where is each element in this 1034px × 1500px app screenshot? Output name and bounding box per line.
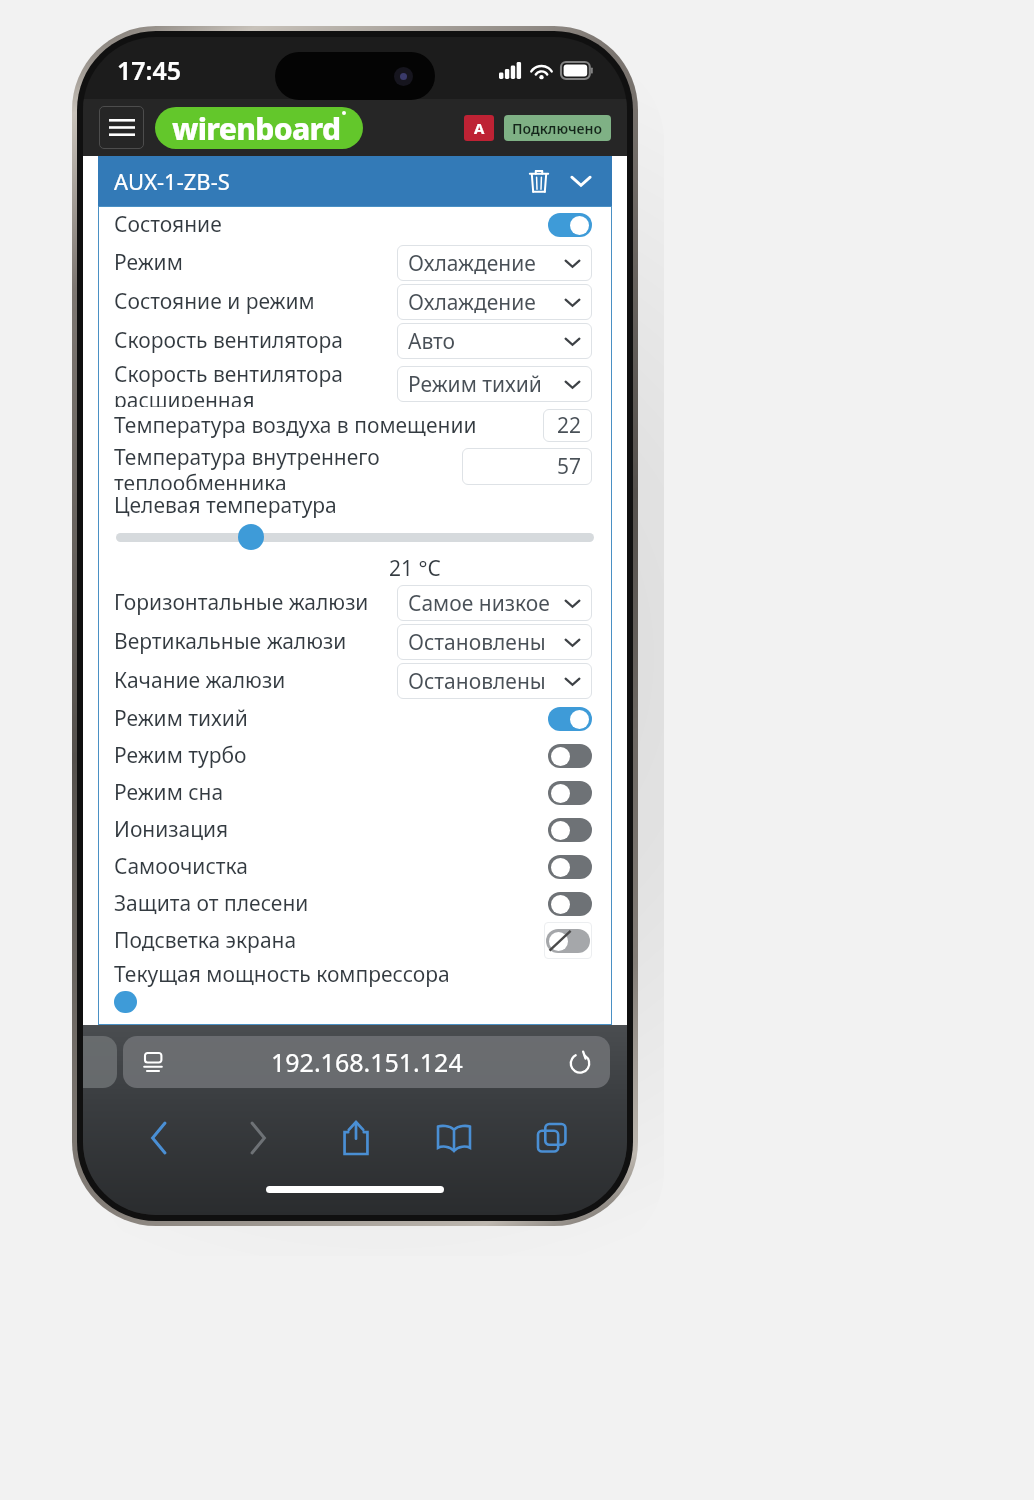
staticText: 57 (557, 452, 582, 481)
staticText: Состояние (114, 210, 548, 239)
staticText: Состояние и режим (114, 287, 397, 316)
staticText: Ионизация (114, 815, 548, 844)
staticText: Режим тихий (114, 704, 548, 733)
staticText: Температура воздуха в помещении (114, 411, 543, 440)
button[interactable]: Share (307, 1103, 405, 1173)
button[interactable]: Ионизация (99, 811, 611, 848)
staticText: Режим турбо (114, 741, 548, 770)
button[interactable]: Bookmarks (405, 1103, 503, 1173)
staticText: Вертикальные жалюзи (114, 627, 397, 656)
staticText: Скорость вентилятора (114, 326, 397, 355)
button[interactable]: Качание жалюзи (99, 661, 611, 700)
button[interactable]: Защита от плесени (99, 885, 611, 922)
staticText: Подсветка экрана (114, 926, 544, 955)
button[interactable]: Подключено (504, 115, 611, 141)
button[interactable]: Menu (99, 106, 144, 149)
staticText: Авто (408, 327, 456, 356)
button[interactable]: Tabs (503, 1103, 601, 1173)
button[interactable]: AUX-1-ZB-S (98, 156, 612, 206)
button[interactable]: Режим (99, 243, 611, 282)
button[interactable]: Forward (208, 1103, 307, 1173)
staticText: Охлаждение (408, 249, 536, 278)
staticText: Горизонтальные жалюзи (114, 588, 397, 617)
staticText: 17:45 (117, 53, 182, 87)
button[interactable]: wirenboard (155, 107, 363, 149)
button[interactable]: Reload (562, 1044, 598, 1080)
staticText: 192.168.151.124 (271, 1045, 463, 1079)
staticText: Самое низкое (408, 589, 550, 618)
button[interactable]: Режим турбо (99, 737, 611, 774)
button[interactable]: Скорость вентилятора (99, 321, 611, 360)
staticText: A (474, 118, 485, 138)
button[interactable]: Target temperature slider (238, 524, 264, 550)
staticText: 22 (557, 411, 582, 440)
button[interactable]: A (464, 115, 494, 141)
staticText: Защита от плесени (114, 889, 548, 918)
staticText: Скорость вентилятора расширенная (114, 360, 397, 407)
button[interactable]: Подсветка экрана (99, 922, 611, 959)
staticText: Самоочистка (114, 852, 548, 881)
staticText: Охлаждение (408, 288, 536, 317)
button[interactable]: Вертикальные жалюзи (99, 622, 611, 661)
button[interactable]: Самоочистка (99, 848, 611, 885)
button[interactable]: Состояние (99, 206, 611, 243)
button[interactable]: Page settings (135, 1044, 171, 1080)
staticText: Режим тихий (408, 370, 542, 399)
button[interactable]: Collapse (564, 164, 598, 198)
button[interactable]: Состояние и режим (99, 282, 611, 321)
staticText: wirenboard (172, 108, 341, 149)
button[interactable]: Скорость вентилятора расширенная (99, 360, 611, 407)
staticText: Текущая мощность компрессора (114, 960, 450, 989)
staticText: Режим (114, 248, 397, 277)
staticText: Качание жалюзи (114, 666, 397, 695)
button[interactable]: Режим тихий (99, 700, 611, 737)
staticText: Остановлены (408, 667, 546, 696)
button[interactable]: Delete (522, 164, 556, 198)
staticText: AUX-1-ZB-S (114, 166, 230, 196)
staticText: Подключено (512, 119, 603, 138)
button[interactable]: Режим сна (99, 774, 611, 811)
staticText: Остановлены (408, 628, 546, 657)
staticText: Температура внутреннего теплообменника (114, 443, 462, 490)
staticText: 21 °C (389, 554, 441, 583)
staticText: Целевая температура (114, 491, 337, 520)
button[interactable]: Page settings (123, 1036, 610, 1088)
button[interactable]: Back (109, 1103, 208, 1173)
button[interactable]: Горизонтальные жалюзи (99, 583, 611, 622)
staticText: Режим сна (114, 778, 548, 807)
